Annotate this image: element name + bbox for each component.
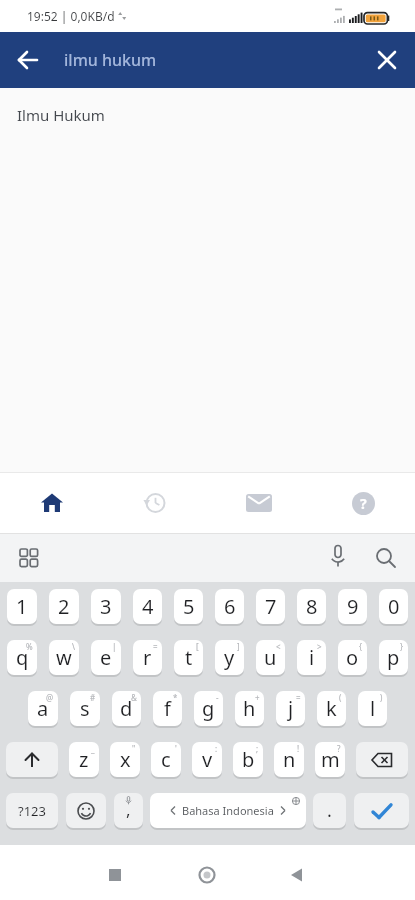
staticText: | [112, 641, 117, 652]
staticText: { [359, 641, 363, 652]
button[interactable]: c [151, 742, 181, 777]
staticText: w [56, 644, 72, 671]
staticText: Bahasa Indonesia [182, 803, 274, 818]
staticText: e [100, 644, 112, 671]
staticText: - [216, 692, 219, 703]
staticText: ilmu hukum [64, 49, 157, 71]
button[interactable]: k [317, 691, 346, 726]
staticText: g [202, 695, 215, 722]
button[interactable]: Ilmu Hukum [0, 88, 415, 139]
staticText: * [173, 692, 178, 703]
button[interactable]: ?123 [6, 793, 58, 828]
staticText: \ [72, 641, 75, 652]
button[interactable]: r [133, 640, 162, 675]
button[interactable]: h [235, 691, 264, 726]
button[interactable] [354, 793, 409, 828]
button[interactable]: i [297, 640, 326, 675]
button[interactable]: 7 [256, 589, 285, 624]
button[interactable] [371, 543, 401, 573]
button[interactable] [323, 543, 353, 573]
staticText: d [120, 695, 133, 722]
button[interactable] [66, 793, 106, 828]
staticText: ( [339, 692, 342, 703]
button[interactable]: w [49, 640, 79, 675]
button[interactable] [359, 32, 415, 88]
staticText: ] [237, 641, 240, 652]
button[interactable]: e [91, 640, 121, 675]
staticText: y [224, 644, 235, 671]
button[interactable]: . [313, 793, 346, 828]
staticText: & [131, 692, 137, 703]
button[interactable]: m [315, 742, 345, 777]
button[interactable]: s [70, 691, 100, 726]
button[interactable]: 6 [215, 589, 244, 624]
button[interactable]: 9 [338, 589, 367, 624]
button[interactable]: 8 [297, 589, 326, 624]
button[interactable]: 1 [7, 589, 37, 624]
button[interactable] [16, 545, 42, 571]
staticText: t [185, 644, 193, 671]
staticText: ! [297, 743, 300, 754]
button[interactable] [103, 473, 207, 533]
button[interactable] [356, 742, 408, 777]
staticText: ? [360, 494, 367, 513]
button[interactable]: f [153, 691, 182, 726]
button[interactable]: ? [311, 473, 415, 533]
button[interactable]: 4 [133, 589, 162, 624]
button[interactable]: l [358, 691, 387, 726]
button[interactable]: Bahasa Indonesia [150, 793, 306, 828]
button[interactable]: 3 [91, 589, 121, 624]
button[interactable]: , [114, 793, 143, 828]
staticText: 5 [183, 593, 195, 620]
button[interactable]: z [69, 742, 99, 777]
staticText: f [164, 695, 171, 722]
staticText: , [126, 798, 131, 821]
staticText: Ilmu Hukum [17, 105, 105, 125]
button[interactable]: q [7, 640, 37, 675]
button[interactable]: d [112, 691, 141, 726]
staticText: } [400, 641, 404, 652]
staticText: x [120, 746, 131, 773]
staticText: 2 [58, 593, 70, 620]
staticText: 6 [224, 593, 236, 620]
button[interactable]: t [174, 640, 203, 675]
button[interactable] [207, 473, 311, 533]
button[interactable]: j [276, 691, 305, 726]
button[interactable]: u [256, 640, 285, 675]
staticText: = [296, 692, 301, 703]
staticText: _ [91, 743, 95, 754]
staticText: o [346, 644, 359, 671]
button[interactable] [0, 473, 103, 533]
button[interactable]: 0 [379, 589, 408, 624]
staticText: q [16, 644, 29, 671]
button[interactable]: 2 [49, 589, 79, 624]
button[interactable]: 5 [174, 589, 203, 624]
button[interactable]: v [192, 742, 222, 777]
staticText: i [309, 644, 315, 671]
button[interactable]: a [28, 691, 58, 726]
staticText: # [90, 692, 96, 703]
button[interactable]: y [215, 640, 244, 675]
staticText: 1 [16, 593, 28, 620]
button[interactable]: o [338, 640, 367, 675]
staticText: . [327, 798, 332, 823]
staticText: + [255, 692, 260, 703]
staticText: a [37, 695, 49, 722]
staticText: c [161, 746, 171, 773]
button[interactable]: n [274, 742, 304, 777]
staticText: m [321, 746, 340, 773]
staticText: j [288, 695, 294, 722]
button[interactable]: p [379, 640, 408, 675]
staticText: % [26, 641, 33, 652]
staticText: l [370, 695, 376, 722]
button[interactable]: b [233, 742, 263, 777]
staticText: s [80, 695, 90, 722]
staticText: ? [337, 743, 341, 754]
button[interactable] [0, 32, 56, 88]
button[interactable]: g [194, 691, 223, 726]
staticText: > [317, 641, 322, 652]
button[interactable]: x [110, 742, 140, 777]
staticText: p [387, 644, 400, 671]
staticText: @ [46, 692, 54, 703]
button[interactable] [6, 742, 58, 777]
